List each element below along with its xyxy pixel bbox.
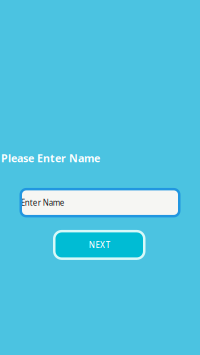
staticText: Enter Name: [21, 197, 65, 208]
staticText: N: [89, 239, 95, 250]
button[interactable]: N: [54, 231, 144, 259]
staticText: T: [106, 239, 110, 250]
staticText: Please Enter Name: [1, 151, 100, 165]
staticText: E: [95, 239, 99, 250]
staticText: X: [100, 239, 105, 250]
button[interactable]: Enter Name: [21, 189, 179, 216]
